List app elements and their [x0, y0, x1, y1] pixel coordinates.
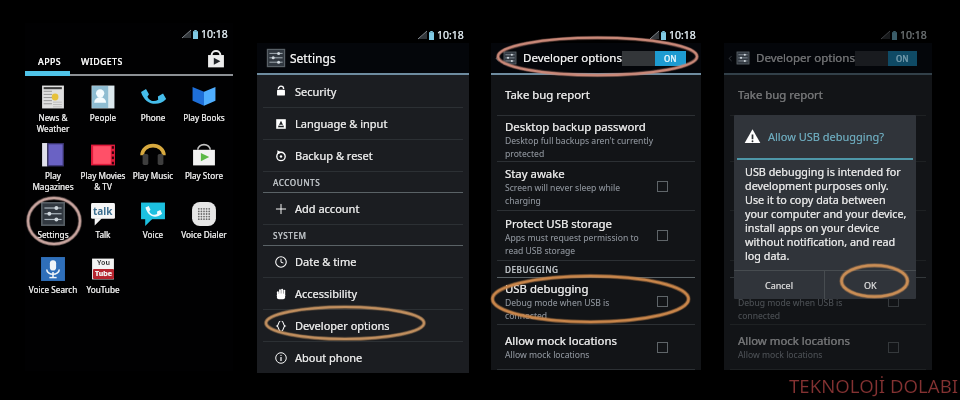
button[interactable]: Desktop backup password	[491, 116, 701, 162]
button[interactable]: Settings	[28, 201, 78, 240]
staticText: Play Books	[179, 112, 229, 123]
button[interactable]: Developer options on/off	[622, 51, 686, 66]
button[interactable]: People	[78, 84, 128, 123]
button[interactable]: Take bug report	[724, 75, 932, 116]
staticText: You	[97, 258, 110, 268]
staticText: USB debugging is intended for developmen…	[745, 164, 907, 263]
staticText: Allow USB debugging?	[768, 129, 884, 144]
staticText: Stay awake	[738, 166, 798, 182]
button[interactable]: WIDGETS	[78, 52, 126, 72]
staticText: SYSTEM	[273, 230, 307, 241]
staticText: Tube	[95, 269, 112, 279]
button[interactable]: USB debugging checkbox	[657, 296, 668, 307]
staticText: Apps must request permission to read USB…	[738, 232, 872, 256]
button[interactable]: Stay awake	[724, 162, 932, 211]
staticText: Take bug report	[738, 87, 823, 103]
staticText: Play Music	[128, 170, 178, 181]
button[interactable]: Play Books	[179, 84, 229, 123]
button[interactable]: Developer options	[724, 43, 932, 73]
staticText: ON	[896, 53, 909, 64]
button[interactable]: Allow mock locations	[491, 325, 701, 370]
button[interactable]: Protect USB storage	[491, 211, 701, 261]
button[interactable]: Accessibility	[257, 278, 469, 309]
button[interactable]: OK	[825, 271, 916, 299]
button[interactable]: Security	[257, 75, 469, 107]
button[interactable]: Developer options on/off	[855, 51, 917, 66]
button[interactable]: Desktop backup password	[724, 116, 932, 162]
button[interactable]: Stay awake checkbox	[657, 181, 668, 192]
staticText: ON	[664, 53, 677, 64]
button[interactable]: Play Movies	[78, 142, 128, 192]
staticText: Settings	[28, 229, 78, 240]
staticText: Add account	[295, 201, 360, 216]
staticText: Play Store	[179, 170, 229, 181]
staticText: Screen will never sleep while charging	[738, 182, 853, 206]
button[interactable]: Play	[28, 142, 78, 192]
staticText: APPS	[38, 56, 61, 68]
button[interactable]: Protect USB storage	[724, 211, 932, 261]
staticText: Play Movies	[78, 170, 128, 181]
button[interactable]: Stay awake	[491, 162, 701, 211]
staticText: USB debugging	[505, 281, 589, 297]
button[interactable]: Voice Search	[28, 256, 78, 295]
button[interactable]: talk	[78, 201, 128, 240]
button[interactable]: APPS	[35, 52, 64, 72]
button[interactable]: Developer options	[491, 43, 701, 73]
button[interactable]: Settings	[257, 43, 469, 73]
staticText: Phone	[128, 112, 178, 123]
button[interactable]: Date & time	[257, 246, 469, 277]
staticText: Allow mock locations	[505, 349, 590, 361]
button[interactable]: Play Store	[205, 48, 227, 70]
staticText: About phone	[295, 350, 363, 365]
button[interactable]: Allow mock locations checkbox	[888, 342, 899, 353]
button[interactable]: Allow mock locations	[724, 325, 932, 370]
staticText: People	[78, 112, 128, 123]
button[interactable]: Play Music	[128, 142, 178, 181]
staticText: Security	[295, 84, 337, 99]
staticText: Debug mode when USB is connected	[505, 297, 610, 321]
staticText: Protect USB storage	[505, 216, 613, 232]
button[interactable]: Play Store	[179, 142, 229, 181]
button[interactable]: USB debugging	[491, 278, 701, 325]
button[interactable]: Backup & reset	[257, 140, 469, 171]
staticText: talk	[93, 204, 113, 218]
staticText: & TV	[78, 181, 128, 192]
button[interactable]: Allow mock locations checkbox	[657, 342, 668, 353]
button[interactable]: You	[78, 256, 128, 295]
button[interactable]: Take bug report	[491, 75, 701, 116]
staticText: Voice Search	[28, 284, 78, 295]
staticText: Desktop full backups aren't currently pr…	[505, 135, 654, 159]
staticText: Developer options	[756, 50, 855, 66]
button[interactable]: USB debugging checkbox	[888, 296, 899, 307]
staticText: 10:18	[669, 28, 696, 42]
staticText: Allow mock locations	[738, 349, 823, 361]
staticText: Allow mock locations	[738, 333, 850, 349]
button[interactable]: Add account	[257, 193, 469, 224]
button[interactable]: Developer options	[257, 310, 469, 341]
staticText: Magazines	[28, 181, 78, 192]
button[interactable]: Protect USB storage checkbox	[888, 230, 899, 241]
staticText: ACCOUNTS	[273, 177, 321, 188]
button[interactable]: News &	[28, 84, 78, 134]
staticText: Cancel	[765, 279, 794, 291]
staticText: WIDGETS	[81, 56, 123, 68]
staticText: Desktop backup password	[738, 119, 879, 135]
staticText: Developer options	[523, 50, 622, 66]
button[interactable]: USB debugging	[724, 278, 932, 325]
staticText: Stay awake	[505, 166, 565, 182]
staticText: 10:18	[900, 28, 927, 42]
button[interactable]: Protect USB storage checkbox	[657, 230, 668, 241]
staticText: Talk	[78, 229, 128, 240]
staticText: Backup & reset	[295, 148, 373, 163]
button[interactable]: About phone	[257, 342, 469, 373]
button[interactable]: Voice	[128, 201, 178, 240]
button[interactable]: Phone	[128, 84, 178, 123]
staticText: Desktop backup password	[505, 119, 646, 135]
button[interactable]: Voice Dialer	[179, 201, 229, 240]
button[interactable]: Language & input	[257, 108, 469, 139]
staticText: Accessibility	[295, 286, 358, 301]
button[interactable]: Cancel	[734, 271, 824, 299]
staticText: Weather	[28, 123, 78, 134]
staticText: Date & time	[295, 254, 357, 269]
